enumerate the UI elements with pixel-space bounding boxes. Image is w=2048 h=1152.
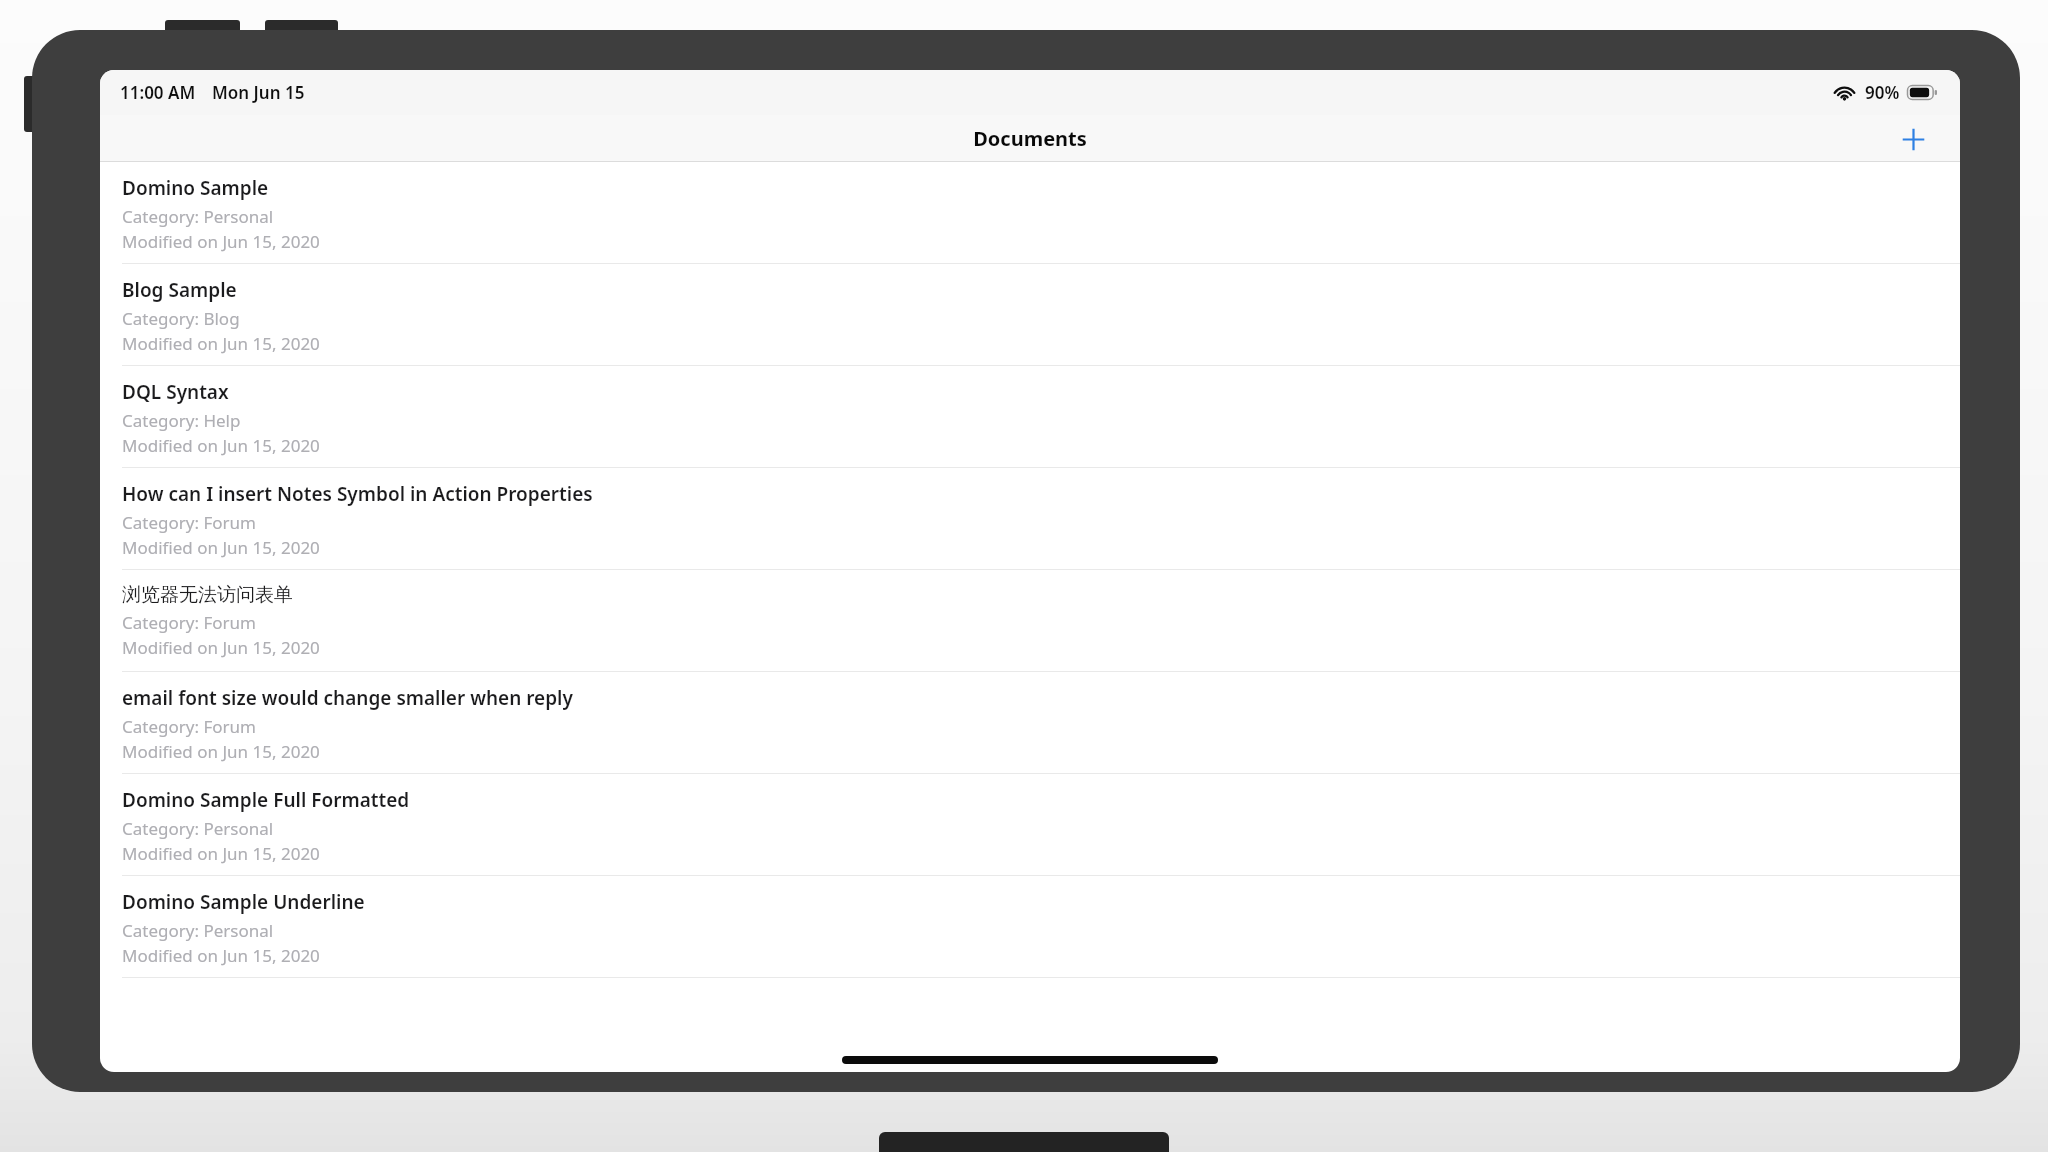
button[interactable]: Domino Sample Full Formatted [100,774,1960,876]
staticText: Modified on Jun 15, 2020 [122,434,320,457]
staticText: How can I insert Notes Symbol in Action … [122,481,593,507]
button[interactable]: How can I insert Notes Symbol in Action … [100,468,1960,570]
staticText: Category: Blog [122,307,240,330]
staticText: Modified on Jun 15, 2020 [122,332,320,355]
staticText: Modified on Jun 15, 2020 [122,944,320,967]
staticText: 90% [1865,81,1900,104]
staticText: Mon Jun 15 [212,81,305,104]
button[interactable]: 浏览器无法访问表单 [100,570,1960,672]
staticText: Category: Forum [122,511,256,534]
staticText: Category: Forum [122,611,256,634]
staticText: Domino Sample [122,175,269,201]
staticText: Domino Sample Full Formatted [122,787,410,813]
button[interactable]: Domino Sample Underline [100,876,1960,978]
staticText: Domino Sample Underline [122,889,365,915]
staticText: email font size would change smaller whe… [122,685,573,711]
staticText: Category: Personal [122,919,274,942]
staticText: Modified on Jun 15, 2020 [122,230,320,253]
staticText: Category: Personal [122,205,274,228]
staticText: Modified on Jun 15, 2020 [122,636,320,659]
button[interactable]: Domino Sample [100,162,1960,264]
staticText: Modified on Jun 15, 2020 [122,536,320,559]
button[interactable]: DQL Syntax [100,366,1960,468]
staticText: 11:00 AM [120,81,196,104]
button[interactable]: email font size would change smaller whe… [100,672,1960,774]
staticText: 浏览器无法访问表单 [122,583,293,607]
button[interactable]: Blog Sample [100,264,1960,366]
staticText: DQL Syntax [122,379,229,405]
staticText: Category: Forum [122,715,256,738]
staticText: Category: Personal [122,817,274,840]
staticText: Blog Sample [122,277,237,303]
staticText: Modified on Jun 15, 2020 [122,740,320,763]
staticText: Modified on Jun 15, 2020 [122,842,320,865]
staticText: Category: Help [122,409,241,432]
staticText: Documents [973,125,1087,152]
button[interactable]: Add document [1892,118,1934,160]
